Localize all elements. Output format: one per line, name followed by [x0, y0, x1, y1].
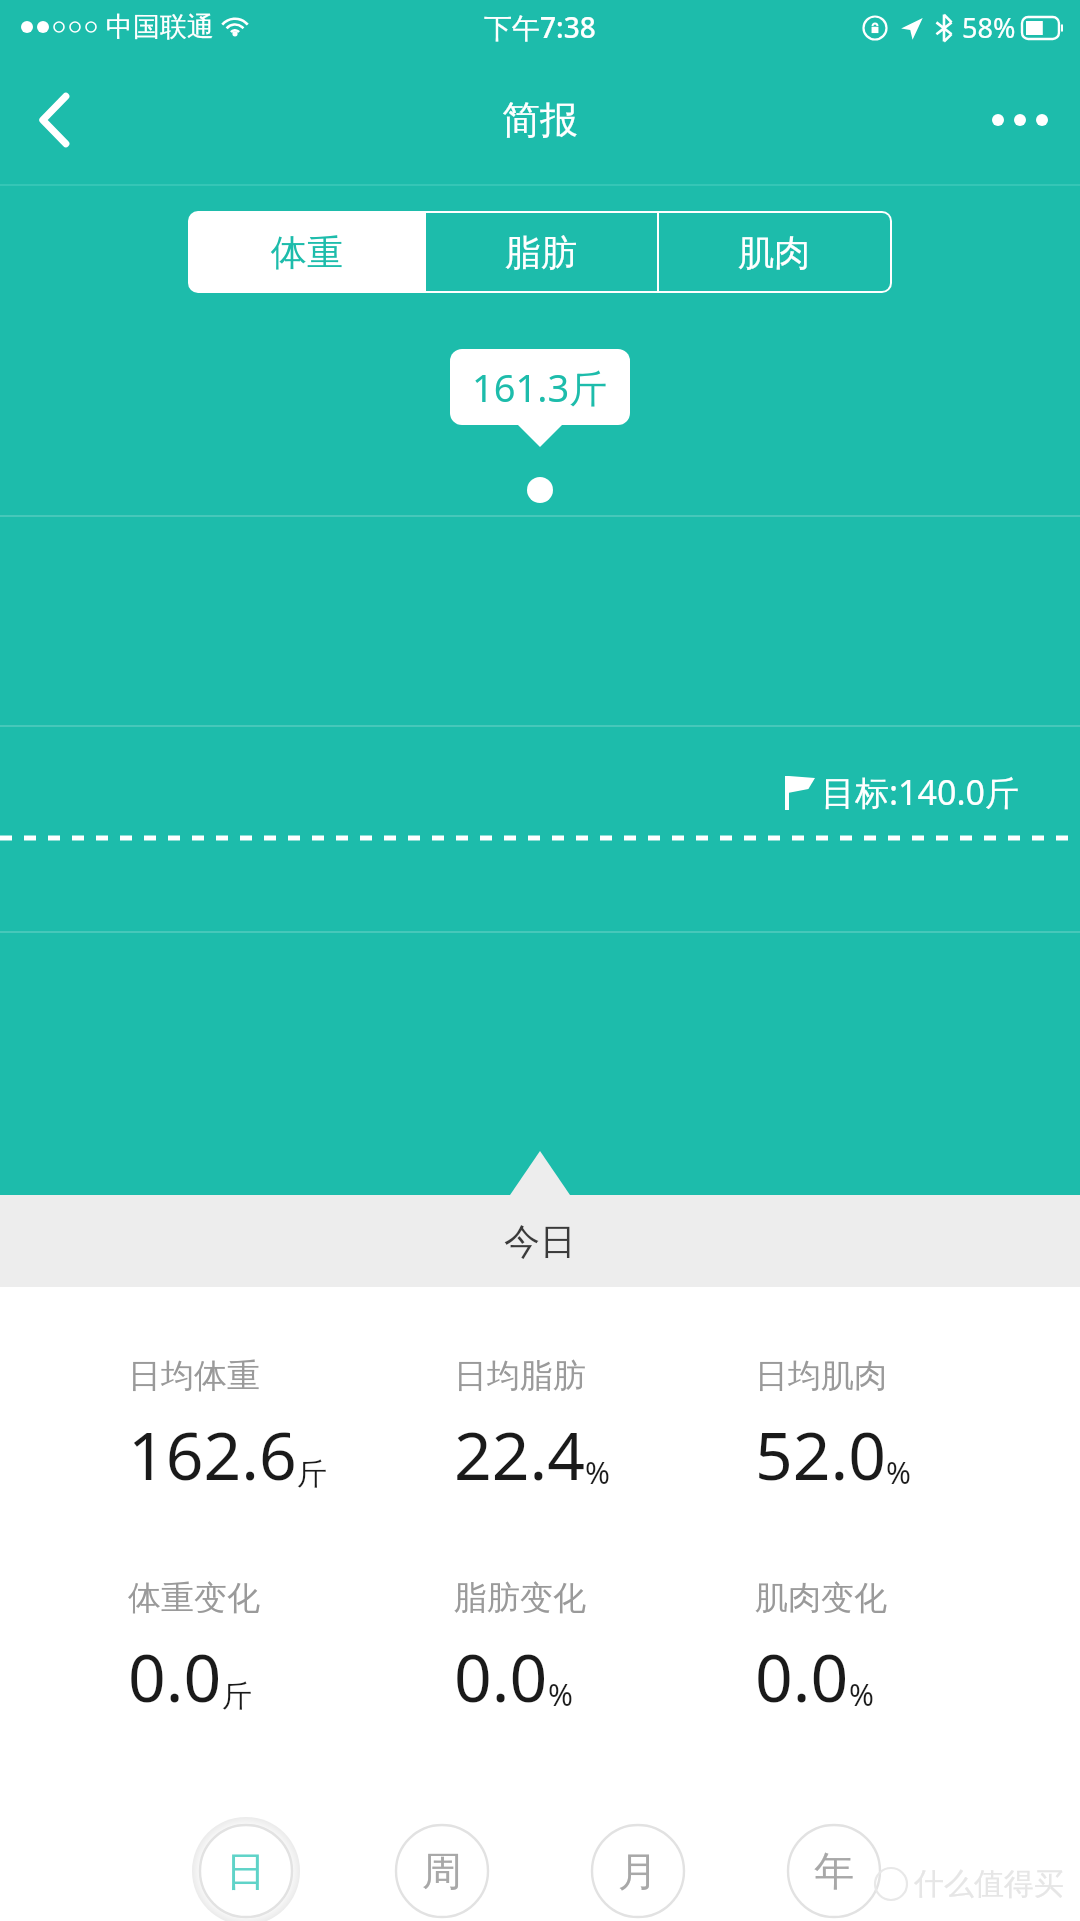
staticText: 体重变化	[128, 1577, 260, 1619]
button[interactable]: More options	[960, 54, 1080, 186]
button[interactable]: 周	[370, 1821, 514, 1921]
staticText: 58%	[962, 9, 1016, 46]
staticText: 日均肌肉	[755, 1355, 887, 1397]
staticText: 161.3斤	[472, 361, 608, 413]
staticText: 0.0	[454, 1631, 548, 1721]
button[interactable]: 体重	[190, 213, 424, 291]
staticText: 0.0	[128, 1631, 222, 1721]
button[interactable]: Back	[0, 54, 110, 186]
button[interactable]: 肌肉	[657, 213, 890, 291]
staticText: 什么值得买	[914, 1865, 1064, 1903]
staticText: 脂肪变化	[454, 1577, 586, 1619]
button[interactable]: 日	[174, 1821, 318, 1921]
staticText: 目标:140.0斤	[821, 769, 1020, 815]
staticText: 脂肪	[505, 230, 577, 275]
staticText: 肌肉变化	[755, 1577, 887, 1619]
staticText: 体重	[271, 230, 343, 275]
staticText: 年	[814, 1846, 854, 1896]
staticText: 日	[226, 1846, 266, 1896]
staticText: 周	[422, 1846, 462, 1896]
staticText: %	[886, 1452, 911, 1493]
staticText: %	[548, 1674, 573, 1715]
staticText: 日均体重	[128, 1355, 260, 1397]
staticText: 0.0	[755, 1631, 849, 1721]
staticText: 中国联通	[106, 10, 214, 44]
staticText: 162.6	[128, 1409, 297, 1499]
button[interactable]: 今日	[0, 1195, 1080, 1287]
staticText: 22.4	[454, 1409, 585, 1499]
staticText: 日均脂肪	[454, 1355, 586, 1397]
staticText: 月	[618, 1846, 658, 1896]
staticText: 今日	[504, 1219, 576, 1264]
button[interactable]: 脂肪	[424, 213, 657, 291]
staticText: 52.0	[755, 1409, 886, 1499]
staticText: %	[585, 1452, 610, 1493]
staticText: 简报	[502, 96, 578, 144]
staticText: 肌肉	[738, 230, 810, 275]
staticText: 斤	[222, 1677, 252, 1715]
button[interactable]: 年	[762, 1821, 906, 1921]
staticText: %	[849, 1674, 874, 1715]
button[interactable]: 月	[566, 1821, 710, 1921]
staticText: 斤	[297, 1455, 327, 1493]
staticText: 下午7:38	[484, 8, 596, 46]
